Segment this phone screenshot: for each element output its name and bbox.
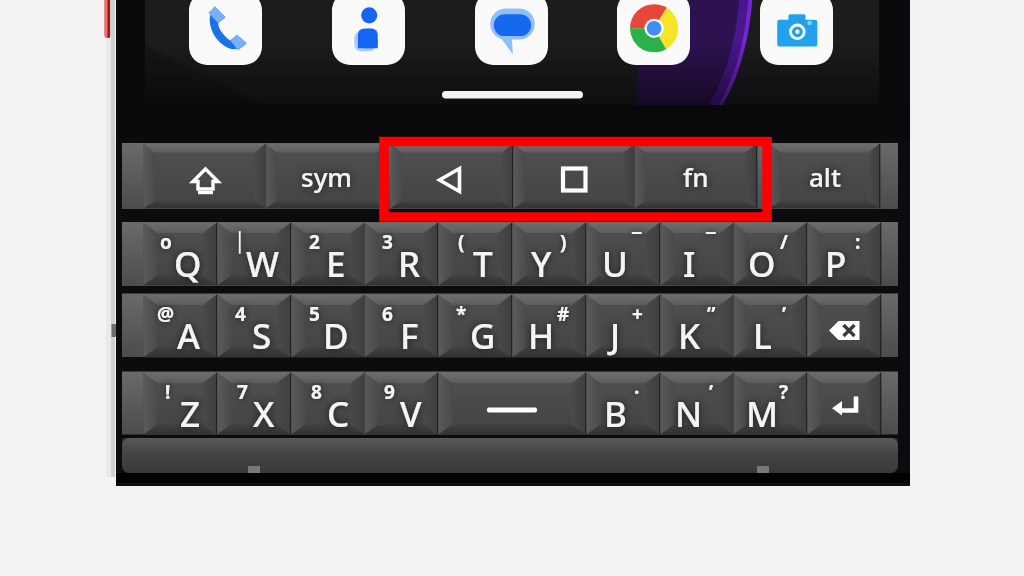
staticText: ) (560, 229, 567, 255)
button[interactable]: Q (143, 222, 217, 286)
button[interactable]: Z (143, 372, 217, 435)
button[interactable]: K (660, 294, 734, 358)
button[interactable]: V (364, 372, 438, 435)
staticText: Q (174, 240, 202, 288)
staticText: A (177, 312, 200, 360)
staticText: B (604, 390, 627, 438)
button[interactable]: B (586, 372, 660, 435)
staticText: H (528, 312, 555, 360)
button[interactable]: Recent apps (513, 143, 635, 209)
button[interactable]: X (217, 372, 291, 435)
staticText: F (400, 312, 419, 360)
staticText: S (252, 312, 272, 360)
staticText: ¯ (632, 229, 642, 255)
button[interactable]: Contacts (332, 0, 405, 65)
staticText: · (634, 379, 640, 405)
button[interactable]: M (733, 372, 807, 435)
button[interactable]: I (660, 222, 734, 286)
button[interactable]: Phone (189, 0, 262, 65)
staticText: N (675, 390, 703, 438)
staticText: # (557, 301, 570, 327)
button[interactable]: Back (390, 143, 513, 209)
button[interactable]: sym (265, 143, 388, 209)
staticText: 3 (382, 229, 393, 255)
button[interactable]: Y (512, 222, 586, 286)
button[interactable]: G (438, 294, 512, 358)
staticText: 2 (309, 229, 320, 255)
staticText: I (683, 240, 696, 288)
staticText: D (323, 312, 349, 360)
button[interactable]: P (807, 222, 881, 286)
staticText: G (470, 312, 496, 360)
button[interactable]: Space (438, 372, 586, 435)
staticText: 4 (235, 301, 246, 327)
staticText: Z (180, 390, 201, 438)
button[interactable]: N (660, 372, 734, 435)
staticText: E (326, 240, 346, 288)
staticText: K (678, 312, 701, 360)
staticText: ’ (709, 379, 714, 405)
button[interactable]: W (217, 222, 291, 286)
button[interactable]: U (586, 222, 660, 286)
button[interactable]: Camera (760, 0, 833, 65)
button[interactable]: Enter (807, 372, 881, 435)
staticText: T (473, 240, 493, 288)
staticText: 5 (309, 301, 320, 327)
staticText: V (400, 390, 422, 438)
staticText: : (855, 229, 861, 255)
staticText: W (246, 240, 279, 288)
button[interactable]: Messages (475, 0, 548, 65)
button[interactable]: Backspace (807, 294, 881, 358)
staticText: 7 (237, 379, 248, 405)
staticText: + (632, 301, 643, 327)
staticText: 9 (384, 379, 395, 405)
button[interactable]: C (291, 372, 365, 435)
staticText: ¯ (706, 229, 716, 255)
button[interactable]: Home (143, 143, 266, 209)
staticText: ( (458, 229, 465, 255)
staticText: Y (531, 240, 552, 288)
button[interactable]: R (364, 222, 438, 286)
staticText: * (456, 301, 467, 327)
button[interactable]: E (291, 222, 365, 286)
staticText: U (602, 240, 628, 288)
staticText: alt (809, 159, 841, 194)
staticText: o (160, 229, 172, 255)
button[interactable]: H (512, 294, 586, 358)
button[interactable]: D (291, 294, 365, 358)
button[interactable]: alt (769, 143, 880, 209)
staticText: @ (157, 301, 175, 327)
staticText: 8 (311, 379, 322, 405)
button[interactable]: F (364, 294, 438, 358)
button[interactable]: S (217, 294, 291, 358)
button[interactable]: fn (634, 143, 757, 209)
staticText: R (398, 240, 421, 288)
staticText: fn (683, 159, 709, 194)
staticText: │ (234, 231, 246, 253)
button[interactable]: Chrome (617, 0, 690, 65)
staticText: P (825, 240, 847, 288)
staticText: / (780, 229, 788, 255)
button[interactable]: A (143, 294, 217, 358)
staticText: ’ (782, 301, 787, 327)
button[interactable]: T (438, 222, 512, 286)
staticText: ” (707, 301, 716, 327)
button[interactable]: L (733, 294, 807, 358)
staticText: O (748, 240, 776, 288)
staticText: ? (779, 379, 789, 405)
staticText: L (753, 312, 772, 360)
staticText: C (327, 390, 350, 438)
staticText: J (610, 312, 621, 360)
staticText: 6 (382, 301, 393, 327)
staticText: X (253, 390, 275, 438)
staticText: M (746, 390, 779, 438)
staticText: sym (301, 159, 352, 194)
button[interactable]: O (733, 222, 807, 286)
button[interactable]: J (586, 294, 660, 358)
staticText: ! (165, 379, 171, 405)
